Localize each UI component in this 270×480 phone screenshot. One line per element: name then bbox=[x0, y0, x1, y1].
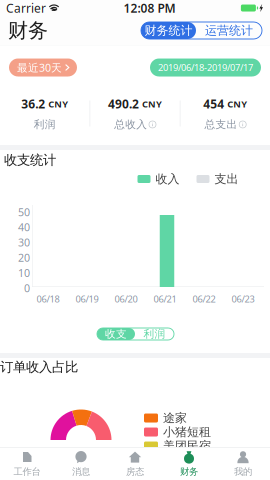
staticText: 40 bbox=[18, 220, 30, 234]
staticText: 20 bbox=[18, 250, 30, 265]
staticText: 36.2 bbox=[21, 96, 45, 112]
staticText: 12:08 PM bbox=[123, 0, 175, 16]
staticText: 财务 bbox=[8, 18, 48, 43]
button[interactable]: 最近30天 bbox=[9, 58, 77, 76]
staticText: 房态 bbox=[126, 466, 144, 477]
staticText: 50 bbox=[18, 205, 30, 219]
staticText: 06/21 bbox=[153, 293, 176, 305]
staticText: 收支统计 bbox=[4, 152, 56, 168]
staticText: 490.2 bbox=[108, 96, 139, 112]
staticText: 06/19 bbox=[75, 293, 98, 305]
staticText: 支出 bbox=[214, 172, 238, 186]
staticText: 美团民宿 bbox=[163, 439, 211, 453]
button[interactable]: 工作台 bbox=[0, 447, 54, 480]
button[interactable]: 收支 bbox=[97, 328, 174, 340]
staticText: 06/18 bbox=[36, 293, 59, 305]
staticText: 2019/06/18-2019/07/17 bbox=[158, 61, 253, 74]
staticText: 运营统计 bbox=[205, 23, 253, 38]
staticText: 30 bbox=[18, 235, 30, 249]
staticText: 途家 bbox=[163, 411, 187, 425]
staticText: 总支出 bbox=[204, 118, 237, 131]
staticText: 10 bbox=[18, 266, 30, 280]
button[interactable]: 财务 bbox=[162, 447, 216, 480]
staticText: CNY bbox=[227, 98, 247, 110]
staticText: 0 bbox=[24, 281, 30, 295]
button[interactable]: 我的 bbox=[216, 447, 270, 480]
staticText: 消息 bbox=[72, 466, 90, 477]
staticText: CNY bbox=[142, 98, 162, 110]
staticText: Carrier bbox=[6, 0, 46, 16]
staticText: CNY bbox=[48, 98, 68, 110]
button[interactable]: 房态 bbox=[108, 447, 162, 480]
staticText: 收支 bbox=[105, 327, 127, 340]
button[interactable]: 财务统计 bbox=[141, 22, 196, 39]
button[interactable]: 收支 bbox=[97, 328, 135, 340]
button[interactable]: 2019/06/18-2019/07/17 bbox=[150, 58, 261, 76]
staticText: 我的 bbox=[234, 466, 252, 477]
staticText: 订单收入占比 bbox=[0, 359, 78, 375]
staticText: 06/20 bbox=[114, 293, 137, 305]
button[interactable]: 运营统计 bbox=[196, 22, 262, 39]
staticText: 工作台 bbox=[13, 466, 40, 477]
staticText: 利润 bbox=[34, 118, 56, 131]
staticText: 06/22 bbox=[192, 293, 215, 305]
staticText: 利润 bbox=[143, 327, 165, 340]
staticText: 财务统计 bbox=[144, 23, 192, 38]
staticText: 总收入 bbox=[114, 118, 147, 131]
button[interactable]: 利润 bbox=[135, 328, 174, 340]
staticText: 最近30天 bbox=[17, 60, 62, 75]
staticText: 收入 bbox=[155, 172, 179, 186]
button[interactable]: 消息 bbox=[54, 447, 108, 480]
staticText: 小猪短租 bbox=[163, 425, 211, 439]
staticText: 454 bbox=[203, 96, 224, 112]
staticText: 06/23 bbox=[231, 293, 254, 305]
staticText: 财务 bbox=[180, 466, 198, 477]
